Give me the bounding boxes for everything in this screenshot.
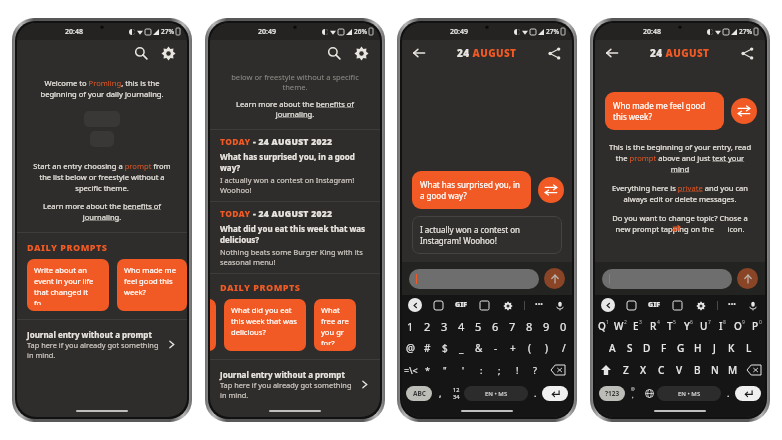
button[interactable]: ( [521,337,538,359]
button[interactable]: D [638,337,655,359]
button[interactable]: Back [603,44,621,62]
button[interactable]: Search [131,43,151,63]
button[interactable]: * [419,359,436,381]
button[interactable]: " [436,359,454,381]
button[interactable]: @ [402,337,419,359]
button[interactable]: + [504,337,521,359]
button[interactable]: & [470,337,487,359]
button[interactable]: ? [526,359,544,381]
button[interactable]: 6 [487,315,504,337]
button[interactable]: ••• [728,300,736,310]
button[interactable] [409,269,539,289]
button[interactable]: ' [454,359,472,381]
button[interactable]: Clipboard [478,299,491,312]
button[interactable]: Change prompt [538,177,564,203]
button[interactable]: 4 [453,315,470,337]
button[interactable]: O [731,315,748,337]
button[interactable]: ?123 [599,386,625,401]
button[interactable]: Who made me feel good this week? [117,259,187,311]
button[interactable]: Collapse toolbar [601,298,615,312]
button[interactable]: # [419,337,436,359]
button[interactable]: =\< [402,359,419,381]
button[interactable]: B [688,359,706,381]
button[interactable]: R [646,315,663,337]
button[interactable]: X [634,359,652,381]
button[interactable]: Stickers [625,299,638,312]
button[interactable]: 2 [419,315,436,337]
button[interactable]: 3 [436,315,453,337]
button[interactable]: Shift [595,359,617,381]
button[interactable]: - [487,337,504,359]
button[interactable]: EN • MS [657,386,721,401]
button[interactable]: _ [453,337,470,359]
button[interactable]: J [706,337,723,359]
button[interactable]: e feel k? [210,299,216,351]
button[interactable]: 7 [504,315,521,337]
button[interactable]: L [740,337,757,359]
button[interactable]: : [472,359,490,381]
button[interactable]: 0 [555,315,572,337]
button[interactable]: 9 [538,315,555,337]
button[interactable]: G [672,337,689,359]
button[interactable]: / [555,337,572,359]
button[interactable]: What has surprised you, in a good way? [412,171,531,209]
button[interactable]: Stickers [432,299,445,312]
button[interactable] [602,269,732,289]
button[interactable]: Send [544,268,565,289]
button[interactable]: Y [680,315,697,337]
button[interactable]: Clipboard [671,299,684,312]
button[interactable]: Change prompt [731,98,757,124]
button[interactable]: $ [436,337,453,359]
button[interactable]: GIF [455,300,468,310]
button[interactable]: Learn more about the benefits of journal… [220,99,370,119]
button[interactable]: Keyboard settings [694,299,707,312]
button[interactable]: TODAY - 24 AUGUST 2022 [210,130,380,201]
button[interactable]: Q [595,315,612,337]
button[interactable]: 1 [402,315,419,337]
button[interactable]: GIF [648,300,661,310]
button[interactable]: F [655,337,672,359]
button[interactable]: TODAY - 24 AUGUST 2022 [210,202,380,273]
button[interactable]: ••• [535,300,543,310]
button[interactable]: Share [545,44,563,62]
button[interactable]: ABC [406,386,432,401]
button[interactable]: Write about an event in your life that c… [27,259,109,311]
button[interactable]: Journal entry without a prompt [210,366,380,403]
button[interactable]: S [621,337,638,359]
button[interactable]: Journal entry without a prompt [17,326,187,363]
button[interactable]: P [748,315,765,337]
button[interactable]: Voice input [746,299,759,312]
button[interactable]: V [670,359,688,381]
button[interactable]: Enter [542,386,568,401]
button[interactable]: 5 [470,315,487,337]
button[interactable]: Send [737,268,758,289]
button[interactable]: Backspace [742,359,765,381]
button[interactable]: Z [617,359,634,381]
button[interactable]: Enter [735,386,761,401]
button[interactable]: ) [538,337,555,359]
button[interactable]: N [706,359,724,381]
button[interactable]: 8 [521,315,538,337]
button[interactable]: T [663,315,680,337]
button[interactable]: C [652,359,670,381]
button[interactable]: M [724,359,742,381]
button[interactable]: W [612,315,629,337]
button[interactable]: Back [410,44,428,62]
button[interactable]: I actually won a contest on Instagram! W… [412,216,562,254]
button[interactable]: What free are you gr for? [314,299,356,351]
button[interactable]: Collapse toolbar [408,298,422,312]
button[interactable]: Search [324,43,344,63]
button[interactable]: Settings [158,43,178,63]
button[interactable]: Who made me feel good this week? [605,92,724,130]
button[interactable]: ; [490,359,508,381]
button[interactable]: What did you eat this week that was deli… [224,299,306,351]
button[interactable]: I [714,315,731,337]
button[interactable]: H [689,337,706,359]
button[interactable]: U [697,315,714,337]
button[interactable]: Share [738,44,756,62]
button[interactable]: A [603,337,621,359]
button[interactable]: Voice input [553,299,566,312]
button[interactable]: Learn more about the benefits of journal… [27,201,177,222]
button[interactable]: EN • MS [464,386,528,401]
button[interactable]: Backspace [544,359,572,381]
